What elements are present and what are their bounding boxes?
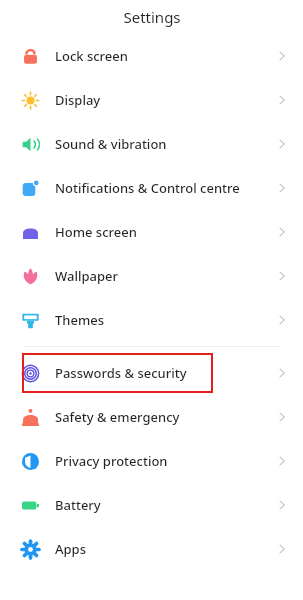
staticText: Privacy protection (55, 452, 168, 470)
button[interactable]: Apps (0, 527, 303, 571)
staticText: Battery (55, 496, 101, 514)
button[interactable]: Safety & emergency (0, 395, 303, 439)
button[interactable]: Passwords & security (0, 351, 303, 395)
button[interactable]: Privacy protection (0, 439, 303, 483)
staticText: Apps (55, 540, 86, 558)
staticText: Passwords & security (55, 364, 187, 382)
button[interactable]: Sound & vibration (0, 122, 303, 166)
staticText: Display (55, 91, 101, 109)
staticText: Wallpaper (55, 267, 118, 285)
staticText: Home screen (55, 223, 137, 241)
button[interactable]: Wallpaper (0, 254, 303, 298)
button[interactable]: Themes (0, 298, 303, 342)
staticText: Sound & vibration (55, 135, 167, 153)
button[interactable]: Notifications & Control centre (0, 166, 303, 210)
staticText: Safety & emergency (55, 408, 180, 426)
staticText: Settings (123, 7, 181, 27)
button[interactable]: Home screen (0, 210, 303, 254)
button[interactable]: Battery (0, 483, 303, 527)
button[interactable]: Display (0, 78, 303, 122)
staticText: Themes (55, 311, 105, 329)
staticText: Notifications & Control centre (55, 179, 240, 197)
staticText: Lock screen (55, 47, 128, 65)
button[interactable]: Lock screen (0, 34, 303, 78)
